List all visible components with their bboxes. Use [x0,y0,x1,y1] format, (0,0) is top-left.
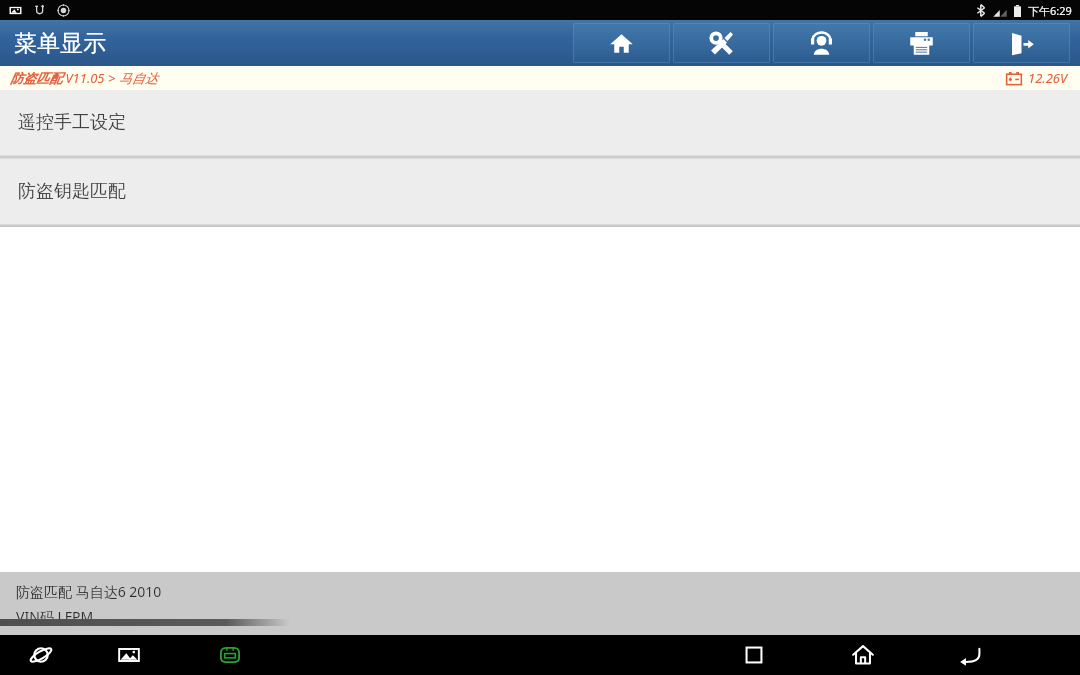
staticText: 防盗匹配 [10,70,62,86]
button[interactable]: Back [917,635,1025,675]
button[interactable]: 防盗钥匙匹配 [0,159,1080,224]
staticText: 菜单显示 [14,29,106,58]
button[interactable]: Home [809,635,917,675]
staticText: VIN码 LFPM [16,607,94,626]
button[interactable]: Gallery [82,635,175,675]
staticText: 防盗匹配 马自达6 2010 [16,582,162,601]
button[interactable]: VCI connection [175,635,285,675]
staticText: 遥控手工设定 [18,111,126,134]
button[interactable]: Tools [673,23,770,63]
staticText: 防盗钥匙匹配 [18,180,126,203]
staticText: V11.05 > 马自达 [62,69,158,87]
staticText: 下午6:29 [1028,3,1072,18]
button[interactable]: 遥控手工设定 [0,90,1080,155]
button[interactable]: Browser [0,635,82,675]
button[interactable]: Recent apps [699,635,809,675]
button[interactable]: Home [573,23,670,63]
button[interactable]: Customer support [773,23,870,63]
staticText: 12.26V [1028,69,1068,87]
button[interactable]: Print [873,23,970,63]
button[interactable]: Exit [973,23,1070,63]
